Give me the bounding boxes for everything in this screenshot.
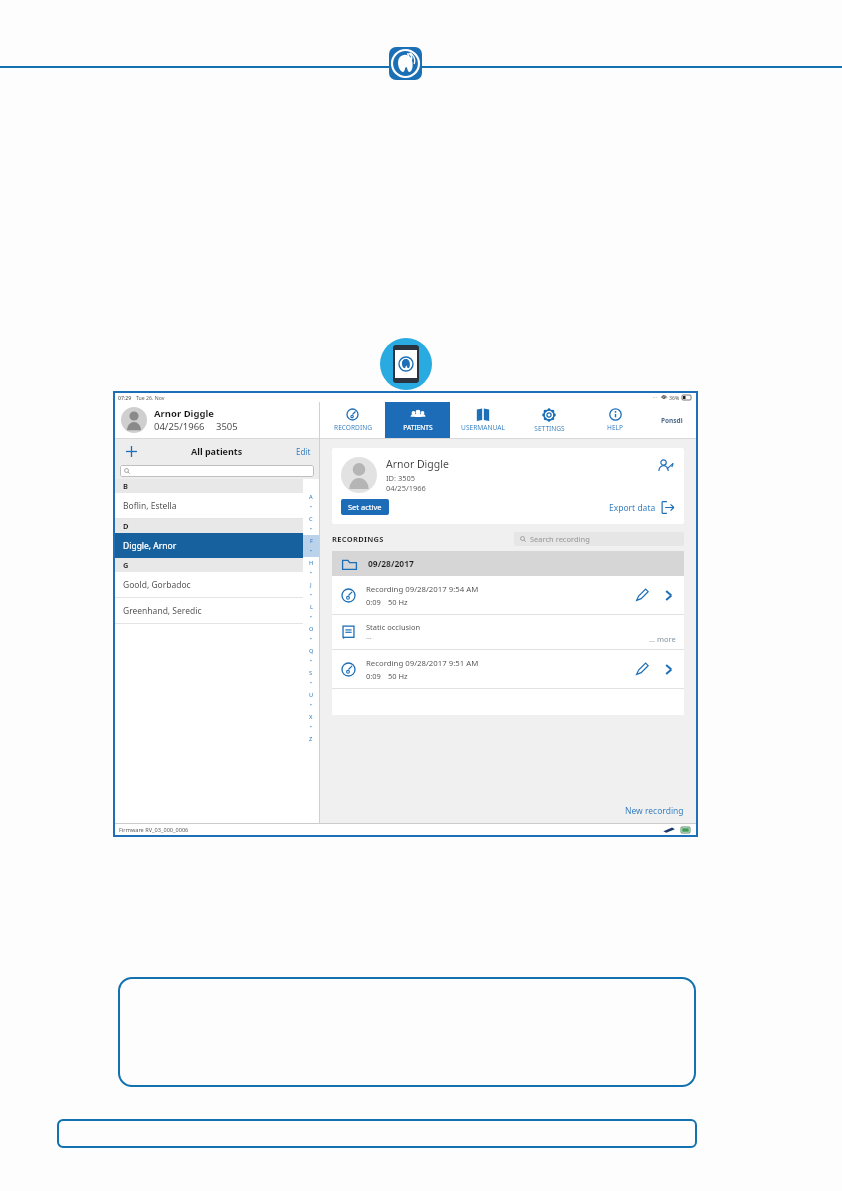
staticText: •	[310, 504, 312, 511]
button[interactable]: PATIENTS	[385, 402, 450, 438]
staticText: ID: 3505	[386, 473, 416, 483]
staticText: 0:09	[366, 671, 381, 681]
button[interactable]: Edit	[296, 446, 311, 457]
staticText: USERMANUAL	[461, 423, 505, 432]
staticText: Recording 09/28/2017 9:54 AM	[366, 584, 479, 595]
staticText: •	[310, 636, 312, 643]
staticText: Set active	[348, 502, 382, 512]
staticText: Search recording	[530, 534, 590, 544]
button[interactable]: Open recording	[660, 661, 676, 677]
staticText: Static occlusion	[366, 622, 421, 632]
staticText: F	[310, 537, 313, 545]
staticText: SETTINGS	[534, 424, 565, 433]
staticText: PATIENTS	[403, 423, 433, 432]
button[interactable]: Search recording	[514, 532, 684, 546]
staticText: U	[309, 691, 314, 699]
staticText: All patients	[191, 445, 243, 457]
staticText: 09/28/2017	[368, 558, 414, 570]
staticText: ···	[653, 394, 658, 401]
button[interactable]: USERMANUAL	[450, 402, 516, 438]
staticText: A	[309, 493, 313, 501]
staticText: 36%	[669, 394, 680, 401]
staticText: Tue 26. Nov	[136, 394, 165, 401]
button[interactable]: Open recording	[660, 587, 676, 603]
button[interactable]: Goold, Gorbadoc	[115, 572, 303, 597]
staticText: •	[310, 658, 312, 665]
staticText: Firmware RV_03_000_0006	[119, 826, 189, 834]
button[interactable]: Export data	[609, 501, 675, 514]
staticText: Edit	[296, 446, 311, 457]
staticText: 04/25/1966	[154, 420, 205, 433]
staticText: G	[123, 560, 129, 570]
button[interactable]: Static occlusion	[332, 615, 684, 649]
button[interactable]: Recording 09/28/2017 9:51 AM	[332, 650, 684, 688]
staticText: B	[123, 481, 128, 491]
staticText: New recording	[625, 805, 684, 817]
button[interactable]: Boflin, Estella	[115, 493, 303, 518]
staticText: Export data	[609, 502, 656, 514]
staticText: Greenhand, Seredic	[123, 605, 202, 617]
staticText: X	[309, 713, 313, 721]
staticText: Arnor Diggle	[386, 457, 449, 471]
staticText: Arnor Diggle	[154, 407, 214, 420]
button[interactable]: Edit recording	[634, 661, 650, 677]
button[interactable]: Edit patient	[655, 457, 675, 477]
staticText: Ponsdi	[661, 416, 683, 425]
staticText: S	[309, 669, 313, 677]
staticText: Recording 09/28/2017 9:51 AM	[366, 658, 479, 669]
button[interactable]: Edit recording	[634, 587, 650, 603]
staticText: L	[310, 603, 313, 611]
staticText: 04/25/1966	[386, 483, 426, 493]
staticText: •	[310, 570, 312, 577]
staticText: Z	[309, 735, 313, 743]
staticText: •	[310, 548, 312, 555]
staticText: 0:09	[366, 597, 381, 607]
staticText: J	[310, 581, 312, 589]
button[interactable]: 09/28/2017	[332, 551, 684, 576]
staticText: Goold, Gorbadoc	[123, 579, 191, 591]
staticText: •	[310, 702, 312, 709]
button[interactable]: HELP	[582, 402, 648, 438]
staticText: ...	[366, 632, 372, 642]
staticText: 3505	[216, 420, 238, 433]
staticText: 50 Hz	[388, 671, 408, 681]
button[interactable]: Greenhand, Seredic	[115, 598, 303, 623]
staticText: •	[310, 724, 312, 731]
button[interactable]: RECORDING	[320, 402, 385, 438]
staticText: 50 Hz	[388, 597, 408, 607]
staticText: RECORDINGS	[332, 534, 384, 544]
button[interactable]: Recording 09/28/2017 9:54 AM	[332, 576, 684, 614]
staticText: •	[310, 526, 312, 533]
staticText: •	[310, 592, 312, 599]
button[interactable]: Diggle, Arnor	[115, 533, 303, 558]
button[interactable]: Add patient	[123, 443, 139, 459]
staticText: •	[310, 680, 312, 687]
staticText: Q	[309, 647, 314, 655]
staticText: HELP	[607, 423, 623, 432]
staticText: D	[123, 521, 129, 531]
button[interactable]: New recording	[625, 805, 684, 823]
staticText: RECORDING	[334, 423, 372, 432]
staticText: H	[309, 559, 314, 567]
staticText: •	[310, 614, 312, 621]
button[interactable]: SETTINGS	[516, 402, 582, 438]
staticText: 07:29	[118, 394, 132, 401]
button[interactable]: Set active	[341, 499, 389, 515]
staticText: Boflin, Estella	[123, 500, 177, 512]
staticText: ... more	[649, 634, 676, 644]
staticText: O	[309, 625, 314, 633]
staticText: Diggle, Arnor	[123, 540, 177, 552]
staticText: C	[309, 515, 313, 523]
button[interactable]	[124, 465, 314, 477]
